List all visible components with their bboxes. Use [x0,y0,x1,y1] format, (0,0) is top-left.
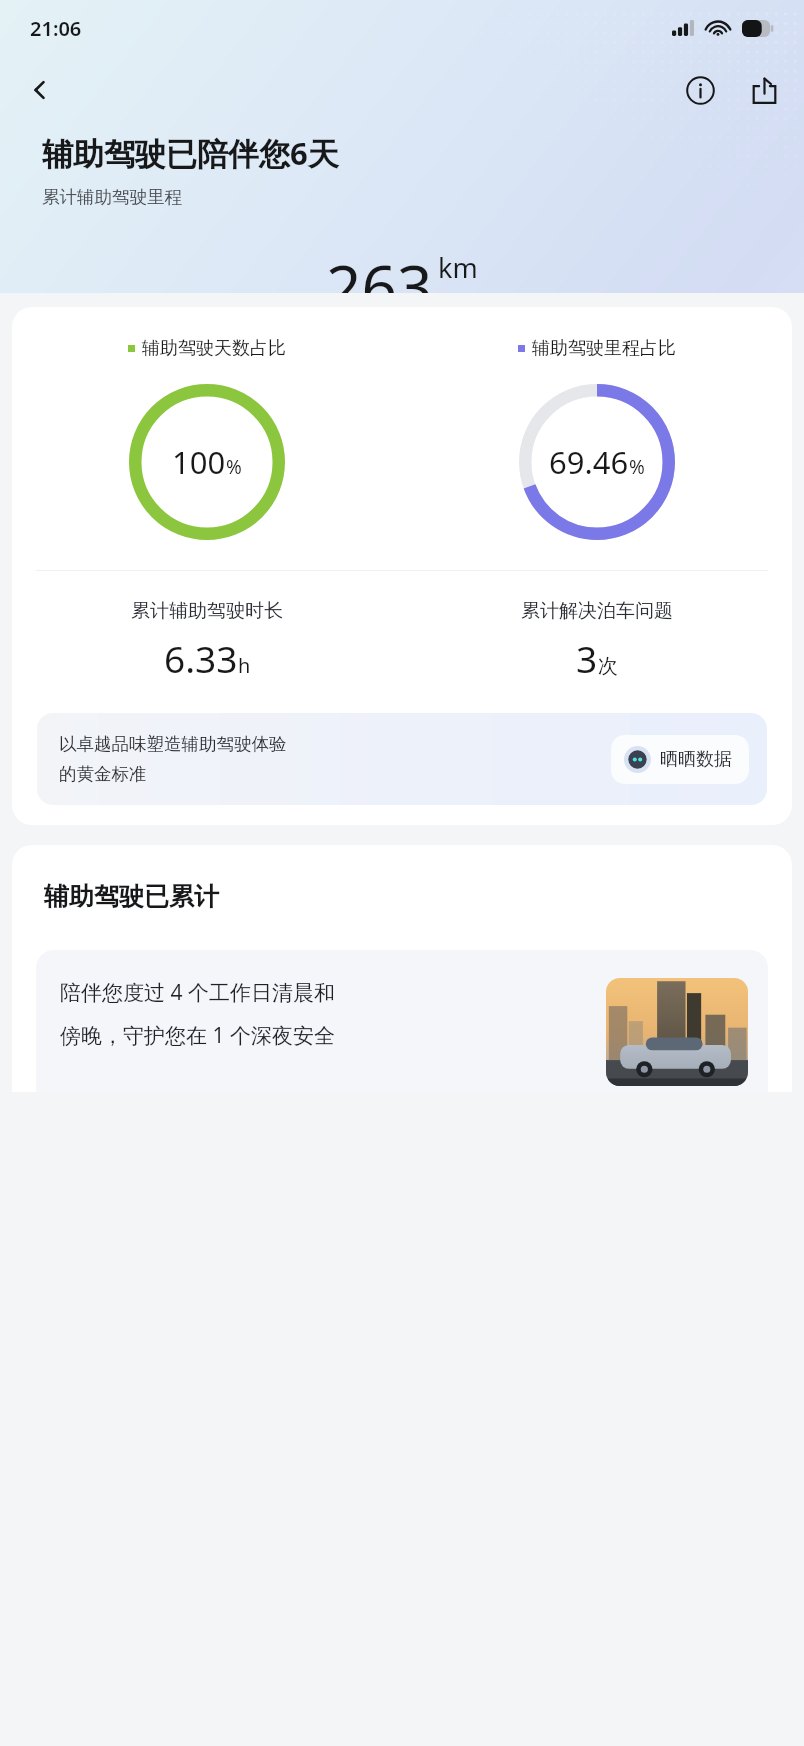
staticText: 3 [576,633,598,683]
staticText: h [238,652,251,679]
staticText: 陪伴您度过 4 个工作日清晨和 [60,978,335,1007]
staticText: % [226,454,242,480]
staticText: 累计辅助驾驶里程 [42,186,182,208]
staticText: 辅助驾驶天数占比 [142,337,286,360]
staticText: 次 [598,654,618,679]
button[interactable]: 晒晒数据 [611,735,749,784]
staticText: 以卓越品味塑造辅助驾驶体验 [59,733,287,755]
staticText: % [629,454,645,480]
staticText: 69.46 [549,441,629,483]
staticText: 累计辅助驾驶时长 [131,599,283,623]
button[interactable]: 陪伴您度过 4 个工作日清晨和 [36,950,768,1092]
staticText: 晒晒数据 [660,748,732,771]
staticText: 辅助驾驶已累计 [44,881,219,912]
staticText: 傍晚，守护您在 1 个深夜安全 [60,1021,335,1050]
staticText: 辅助驾驶里程占比 [532,337,676,360]
staticText: 累计解决泊车问题 [521,599,673,623]
button[interactable]: Back [18,70,62,110]
button[interactable]: Share [742,70,786,110]
staticText: 21:06 [30,15,82,42]
staticText: 的黄金标准 [59,763,147,785]
staticText: 100 [172,441,226,483]
staticText: km [438,249,478,286]
staticText: 6.33 [164,633,238,683]
staticText: 辅助驾驶已陪伴您6天 [42,132,339,174]
button[interactable]: Info [678,70,722,110]
staticText: 263 [326,244,433,293]
